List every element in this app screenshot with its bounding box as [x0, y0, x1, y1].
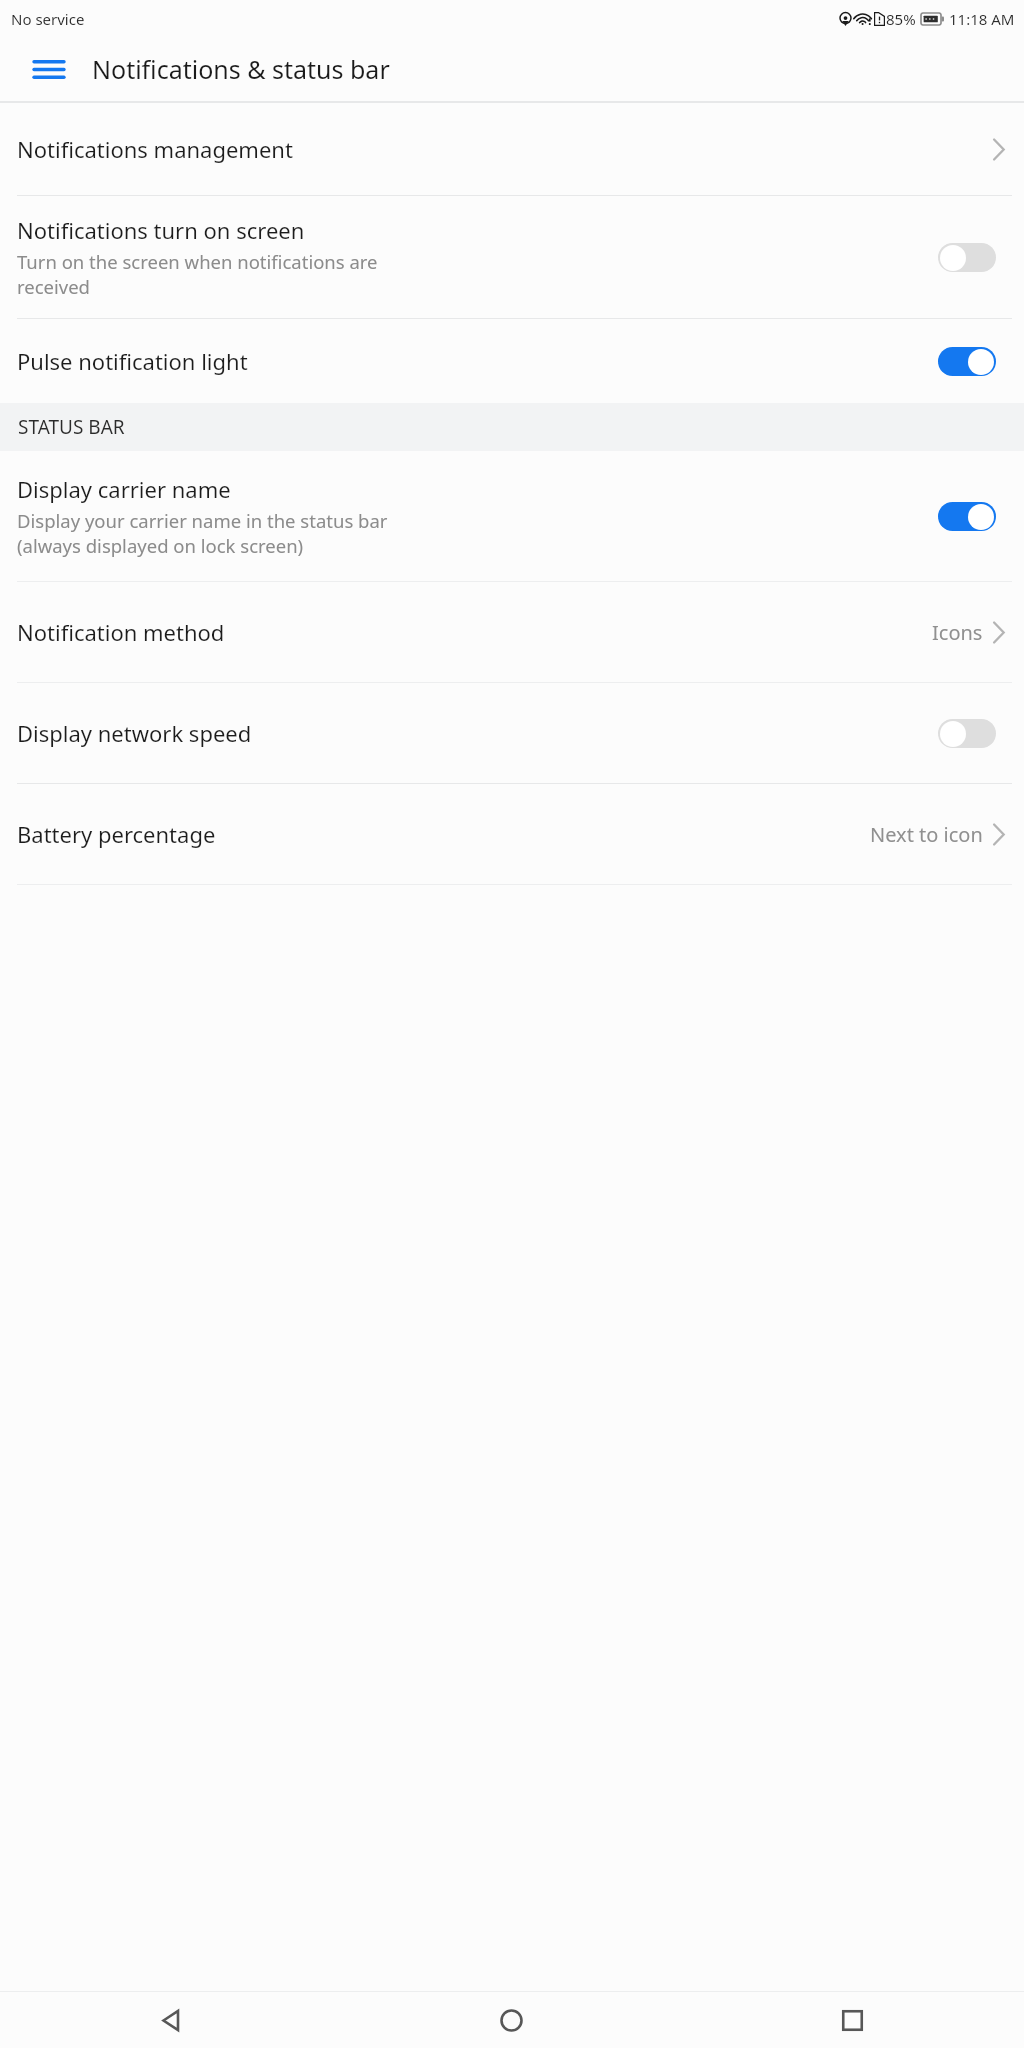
staticText: Notifications management — [17, 134, 992, 164]
button[interactable]: Battery percentage — [0, 784, 1024, 884]
staticText: Pulse notification light — [17, 346, 248, 376]
button[interactable]: Recent apps — [682, 1992, 1023, 2048]
button[interactable]: Switch, on — [938, 502, 996, 531]
button[interactable]: Pulse notification light — [0, 319, 1024, 403]
button[interactable]: Notification method — [0, 582, 1024, 682]
staticText: Turn on the screen when notifications ar… — [17, 249, 378, 300]
button[interactable]: Switch, off — [938, 719, 996, 748]
button[interactable]: Switch, on — [938, 347, 996, 376]
staticText: STATUS BAR — [18, 414, 125, 440]
staticText: No service — [11, 9, 85, 29]
staticText: Battery percentage — [17, 819, 870, 849]
button[interactable]: Display carrier name — [0, 451, 1024, 581]
button[interactable]: Home — [341, 1992, 682, 2048]
staticText: Notifications & status bar — [92, 52, 390, 86]
staticText: Icons — [932, 619, 983, 646]
staticText: Display network speed — [17, 718, 252, 748]
staticText: Next to icon — [870, 821, 983, 848]
button[interactable]: Switch, off — [938, 243, 996, 272]
button[interactable]: Navigation menu — [26, 46, 72, 92]
staticText: 85% — [886, 9, 916, 29]
button[interactable]: Display network speed — [0, 683, 1024, 783]
staticText: 11:18 AM — [949, 9, 1015, 29]
staticText: Display carrier name — [17, 474, 231, 504]
button[interactable]: Notifications turn on screen — [0, 196, 1024, 318]
staticText: Notifications turn on screen — [17, 215, 305, 245]
staticText: Display your carrier name in the status … — [17, 508, 388, 559]
button[interactable]: Back — [0, 1992, 341, 2048]
button[interactable]: Notifications management — [0, 103, 1024, 195]
staticText: Notification method — [17, 617, 932, 647]
